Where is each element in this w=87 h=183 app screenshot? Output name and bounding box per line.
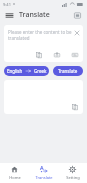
button[interactable]: Keyboard	[70, 50, 79, 59]
button[interactable]: Home	[0, 163, 29, 183]
button[interactable]: Translate	[29, 163, 58, 183]
button[interactable]: Image translate	[72, 10, 83, 21]
button[interactable]: Paste	[34, 50, 43, 59]
staticText: Home	[9, 175, 21, 180]
staticText: Translate	[58, 68, 78, 74]
button[interactable]: Camera	[52, 50, 61, 59]
staticText: Greek	[34, 68, 47, 74]
button[interactable]: Clear	[73, 29, 81, 37]
button[interactable]: Menu	[4, 10, 14, 20]
staticText: Setting	[66, 175, 80, 180]
button[interactable]: Setting	[58, 163, 87, 183]
button[interactable]: English	[4, 66, 49, 76]
staticText: Translate	[19, 10, 50, 20]
staticText: 9:41	[3, 2, 11, 7]
staticText: Translate	[35, 175, 53, 180]
button[interactable]: Copy	[70, 102, 79, 111]
staticText: Please enter the content to be translate…	[8, 29, 73, 41]
staticText: English	[7, 68, 23, 74]
button[interactable]: Translate	[53, 66, 83, 76]
